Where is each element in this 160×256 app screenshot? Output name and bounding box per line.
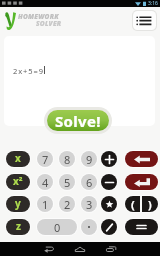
staticText: 3: [86, 197, 93, 212]
button[interactable]: 5: [59, 174, 75, 190]
staticText: Solve!: [55, 111, 101, 131]
button[interactable]: 4: [37, 174, 53, 190]
button[interactable]: 8: [59, 151, 75, 167]
button[interactable]: 1: [37, 196, 53, 212]
button[interactable]: Close parenthesis: [142, 196, 158, 212]
button[interactable]: Solve!: [47, 110, 109, 131]
button[interactable]: Enter: [125, 174, 158, 190]
button[interactable]: Back: [41, 242, 57, 256]
button[interactable]: 7: [37, 151, 53, 167]
staticText: 2: [64, 197, 71, 212]
staticText: 5: [64, 175, 71, 190]
button[interactable]: Multiply: [101, 196, 117, 212]
staticText: x²: [13, 174, 23, 188]
button[interactable]: 6: [81, 174, 97, 190]
button[interactable]: x²: [6, 174, 30, 190]
button[interactable]: Backspace: [125, 151, 158, 167]
button[interactable]: Divide: [101, 219, 117, 235]
button[interactable]: Plus: [101, 151, 117, 167]
button[interactable]: 0: [37, 219, 77, 235]
button[interactable]: 2x+5=9: [4, 36, 155, 126]
staticText: ): [148, 197, 152, 212]
button[interactable]: Menu: [133, 11, 156, 30]
staticText: y: [15, 196, 21, 210]
staticText: (: [131, 197, 135, 212]
button[interactable]: 2: [59, 196, 75, 212]
staticText: HOMEWORK: [18, 12, 59, 21]
staticText: 4: [42, 175, 49, 190]
staticText: 9: [86, 152, 93, 167]
button[interactable]: [81, 219, 97, 235]
staticText: 3:16: [148, 0, 158, 7]
staticText: 1: [42, 197, 49, 212]
staticText: 6: [86, 175, 93, 190]
button[interactable]: x: [6, 151, 30, 167]
button[interactable]: Equals: [125, 219, 158, 235]
button[interactable]: Home: [72, 242, 88, 256]
staticText: 7: [42, 152, 49, 167]
button[interactable]: Recents: [103, 242, 119, 256]
button[interactable]: Open parenthesis: [125, 196, 140, 212]
button[interactable]: z: [6, 219, 30, 235]
button[interactable]: 3: [81, 196, 97, 212]
staticText: 2x+5=9: [13, 66, 44, 76]
staticText: SOLVER: [36, 19, 62, 28]
button[interactable]: 9: [81, 151, 97, 167]
staticText: x: [15, 151, 21, 165]
staticText: 8: [64, 152, 71, 167]
staticText: 0: [54, 220, 61, 235]
staticText: z: [16, 219, 21, 233]
button[interactable]: y: [6, 196, 30, 212]
button[interactable]: Minus: [101, 174, 117, 190]
